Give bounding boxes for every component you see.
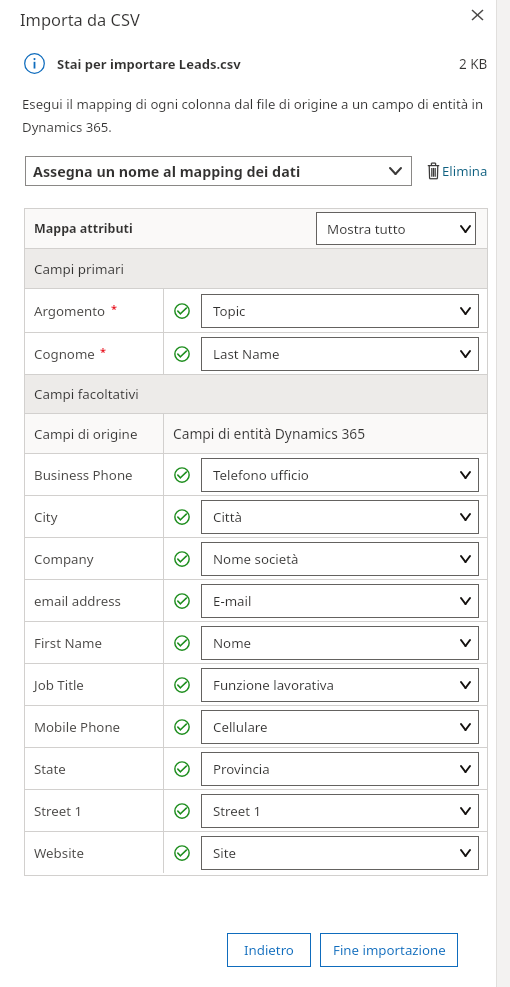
button[interactable]: Indietro [227, 933, 311, 967]
button[interactable]: Assegna un nome al mapping dei dati [25, 156, 412, 186]
staticText: Esegui il mapping di ogni colonna dal fi… [22, 95, 490, 136]
button[interactable]: State [24, 748, 488, 789]
staticText: Campi primari [34, 260, 124, 278]
staticText: Business Phone [34, 466, 133, 484]
staticText: Funzione lavorativa [213, 676, 335, 694]
button[interactable]: Company [24, 538, 488, 579]
staticText: Topic [213, 302, 246, 320]
staticText: 2 KB [459, 55, 488, 73]
staticText: Job Title [34, 676, 84, 694]
button[interactable]: City [24, 496, 488, 537]
staticText: Website [34, 844, 84, 862]
button[interactable]: Cellulare [201, 710, 479, 744]
button[interactable]: Job Title [24, 664, 488, 705]
button[interactable]: Città [201, 500, 479, 534]
staticText: City [34, 508, 58, 526]
button[interactable]: email address [24, 580, 488, 621]
staticText: First Name [34, 634, 102, 652]
staticText: Fine importazione [333, 941, 446, 959]
staticText: Provincia [213, 760, 270, 778]
staticText: Company [34, 550, 94, 568]
button[interactable]: Mostra tutto [316, 212, 476, 245]
staticText: * [111, 301, 117, 316]
button[interactable]: Street 1 [201, 794, 479, 828]
staticText: email address [34, 592, 121, 610]
staticText: Argomento [34, 302, 106, 320]
staticText: Città [213, 508, 242, 526]
button[interactable]: Topic [201, 294, 479, 328]
staticText: State [34, 760, 66, 778]
staticText: Campi di entità Dynamics 365 [173, 424, 366, 443]
button[interactable]: Argomento [24, 289, 488, 332]
staticText: Mostra tutto [327, 220, 406, 238]
button[interactable]: Mobile Phone [24, 706, 488, 747]
button[interactable]: Elimina [427, 161, 488, 181]
button[interactable]: Site [201, 836, 479, 870]
staticText: Cellulare [213, 718, 268, 736]
staticText: Nome [213, 634, 252, 652]
staticText: Campi di origine [34, 425, 138, 443]
staticText: Cognome [34, 345, 95, 363]
staticText: Street 1 [34, 802, 83, 820]
staticText: Nome società [213, 550, 299, 568]
staticText: Street 1 [213, 802, 262, 820]
button[interactable]: Funzione lavorativa [201, 668, 479, 702]
button[interactable]: Nome [201, 626, 479, 660]
button[interactable]: Nome società [201, 542, 479, 576]
staticText: Mobile Phone [34, 718, 121, 736]
staticText: Assegna un nome al mapping dei dati [33, 162, 301, 181]
button[interactable]: Last Name [201, 337, 479, 371]
staticText: Importa da CSV [20, 8, 140, 30]
button[interactable]: Fine importazione [320, 933, 458, 967]
button[interactable]: Provincia [201, 752, 479, 786]
staticText: Indietro [244, 941, 294, 959]
button[interactable]: Street 1 [24, 790, 488, 831]
button[interactable]: Telefono ufficio [201, 458, 479, 492]
button[interactable]: Business Phone [24, 454, 488, 495]
staticText: Campi facoltativi [34, 385, 139, 403]
button[interactable]: Cognome [24, 333, 488, 374]
staticText: Site [213, 844, 237, 862]
staticText: Stai per importare Leads.csv [57, 55, 241, 73]
button[interactable]: Website [24, 832, 488, 873]
button[interactable]: Chiudi [461, 0, 494, 30]
staticText: Mappa attributi [34, 220, 133, 237]
staticText: * [100, 344, 106, 359]
staticText: E-mail [213, 592, 252, 610]
staticText: Elimina [442, 162, 488, 180]
button[interactable]: E-mail [201, 584, 479, 618]
staticText: Last Name [213, 345, 280, 363]
button[interactable]: First Name [24, 622, 488, 663]
staticText: Telefono ufficio [213, 466, 309, 484]
